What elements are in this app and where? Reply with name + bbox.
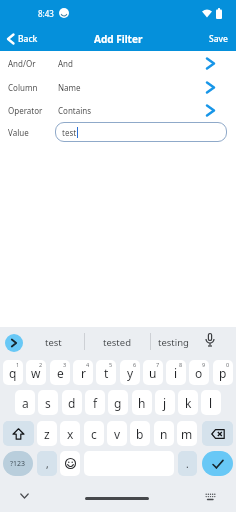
- button[interactable]: ,: [37, 451, 57, 476]
- staticText: .: [186, 457, 189, 471]
- staticText: q: [9, 365, 17, 381]
- staticText: u: [149, 365, 157, 381]
- staticText: 0: [226, 361, 230, 368]
- staticText: Save: [209, 33, 228, 45]
- staticText: s: [45, 395, 51, 411]
- staticText: r: [81, 365, 86, 381]
- staticText: 6: [133, 361, 137, 368]
- button[interactable]: r: [73, 360, 93, 385]
- button[interactable]: tested: [84, 327, 150, 358]
- button[interactable]: a: [15, 390, 35, 415]
- button[interactable]: v: [107, 421, 127, 446]
- staticText: Column: [8, 82, 38, 93]
- staticText: c: [91, 426, 97, 442]
- button[interactable]: [60, 451, 80, 476]
- staticText: m: [181, 426, 193, 442]
- button[interactable]: q: [3, 360, 23, 385]
- staticText: test: [62, 127, 77, 138]
- button[interactable]: [85, 497, 149, 500]
- button[interactable]: [202, 451, 233, 476]
- button[interactable]: b: [130, 421, 150, 446]
- button[interactable]: test: [55, 122, 227, 142]
- staticText: 7: [156, 361, 160, 368]
- staticText: 8:43: [38, 8, 54, 19]
- button[interactable]: l: [201, 390, 221, 415]
- staticText: 2: [39, 361, 43, 368]
- button[interactable]: h: [132, 390, 152, 415]
- button[interactable]: ?123: [3, 451, 33, 476]
- staticText: And: [58, 58, 73, 69]
- staticText: g: [114, 395, 122, 411]
- button[interactable]: [3, 421, 34, 446]
- button[interactable]: Save: [209, 33, 228, 45]
- staticText: h: [138, 395, 146, 411]
- button[interactable]: p: [213, 360, 233, 385]
- button[interactable]: [202, 421, 233, 446]
- staticText: j: [163, 395, 167, 411]
- staticText: f: [93, 395, 98, 411]
- staticText: And/Or: [8, 58, 36, 69]
- staticText: x: [67, 426, 74, 442]
- staticText: Back: [18, 33, 38, 45]
- staticText: v: [114, 426, 121, 442]
- staticText: 8: [179, 361, 183, 368]
- button[interactable]: e: [50, 360, 70, 385]
- staticText: test: [45, 336, 62, 349]
- button[interactable]: f: [85, 390, 105, 415]
- staticText: l: [209, 395, 213, 411]
- button[interactable]: u: [143, 360, 163, 385]
- button[interactable]: Back: [7, 33, 38, 45]
- button[interactable]: m: [177, 421, 197, 446]
- button[interactable]: k: [178, 390, 198, 415]
- staticText: w: [31, 365, 41, 381]
- staticText: 3: [63, 361, 67, 368]
- button[interactable]: [205, 493, 216, 502]
- staticText: b: [136, 426, 144, 442]
- staticText: Contains: [58, 105, 92, 116]
- button[interactable]: g: [108, 390, 128, 415]
- staticText: n: [160, 426, 168, 442]
- button[interactable]: And/Or: [0, 51, 236, 75]
- button[interactable]: Operator: [0, 99, 236, 122]
- button[interactable]: w: [26, 360, 46, 385]
- staticText: 1: [16, 361, 20, 368]
- staticText: Name: [58, 82, 81, 93]
- staticText: Add Filter: [94, 32, 143, 46]
- button[interactable]: test: [23, 327, 84, 358]
- staticText: 9: [202, 361, 206, 368]
- button[interactable]: Column: [0, 75, 236, 99]
- staticText: d: [68, 395, 76, 411]
- button[interactable]: y: [120, 360, 140, 385]
- button[interactable]: [20, 493, 29, 499]
- staticText: z: [44, 426, 50, 442]
- staticText: Value: [8, 127, 29, 138]
- staticText: p: [219, 365, 227, 381]
- button[interactable]: n: [154, 421, 174, 446]
- button[interactable]: t: [96, 360, 116, 385]
- staticText: y: [127, 365, 134, 381]
- button[interactable]: [205, 333, 215, 349]
- staticText: t: [104, 365, 109, 381]
- button[interactable]: .: [178, 451, 197, 476]
- button[interactable]: s: [38, 390, 58, 415]
- staticText: tested: [103, 336, 131, 349]
- staticText: 5: [109, 361, 113, 368]
- button[interactable]: x: [60, 421, 80, 446]
- staticText: ,: [46, 457, 49, 471]
- button[interactable]: testing: [150, 327, 196, 358]
- button[interactable]: j: [155, 390, 175, 415]
- button[interactable]: o: [189, 360, 209, 385]
- button[interactable]: z: [37, 421, 57, 446]
- button[interactable]: [5, 334, 23, 352]
- staticText: i: [174, 365, 178, 381]
- staticText: testing: [158, 336, 189, 349]
- staticText: k: [185, 395, 192, 411]
- button[interactable]: d: [62, 390, 82, 415]
- staticText: o: [195, 365, 203, 381]
- button[interactable]: c: [84, 421, 104, 446]
- staticText: 4: [86, 361, 90, 368]
- staticText: ?123: [10, 459, 26, 469]
- button[interactable]: i: [166, 360, 186, 385]
- staticText: a: [22, 395, 29, 411]
